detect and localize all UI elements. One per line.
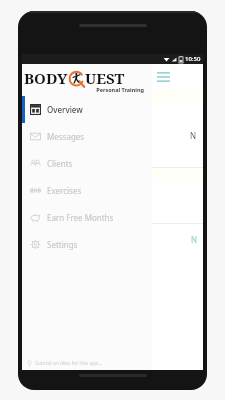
button[interactable]: Overview xyxy=(22,96,152,123)
staticText: Exercises xyxy=(47,185,82,196)
staticText: Earn Free Months xyxy=(47,212,114,223)
button[interactable]: Messages xyxy=(22,123,152,150)
button[interactable]: Clients xyxy=(22,150,152,177)
button[interactable]: Submit an idea for this app... xyxy=(22,356,152,370)
button[interactable]: Exercises xyxy=(22,177,152,204)
staticText: BODY xyxy=(24,68,68,88)
staticText: Submit an idea for this app... xyxy=(35,360,103,367)
staticText: N xyxy=(191,234,198,245)
staticText: Settings xyxy=(47,239,78,250)
staticText: Messages xyxy=(47,131,85,142)
staticText: Overview xyxy=(47,104,83,115)
staticText: 10:50 xyxy=(185,55,201,63)
staticText: UEST xyxy=(85,68,125,88)
staticText: N xyxy=(190,130,197,141)
staticText: Clients xyxy=(47,158,73,169)
staticText: Personal Training xyxy=(96,86,144,93)
button[interactable]: Settings xyxy=(22,231,152,258)
button[interactable]: Earn Free Months xyxy=(22,204,152,231)
button[interactable]: Open navigation menu xyxy=(152,66,174,88)
